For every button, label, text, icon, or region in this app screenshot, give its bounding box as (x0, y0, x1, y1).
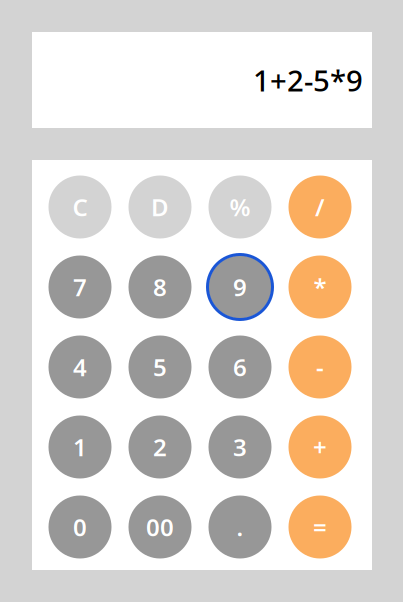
button[interactable]: 9 (200, 247, 280, 327)
button[interactable]: Add (280, 407, 360, 487)
button[interactable]: Subtract (280, 327, 360, 407)
button[interactable]: Decimal point (200, 487, 280, 567)
button[interactable]: 4 (40, 327, 120, 407)
button[interactable]: Multiply (280, 247, 360, 327)
staticText: 2 (153, 431, 167, 463)
staticText: 00 (146, 511, 174, 543)
button[interactable]: 1 (40, 407, 120, 487)
button[interactable]: Delete (120, 167, 200, 247)
staticText: 7 (73, 271, 87, 303)
button[interactable]: Divide (280, 167, 360, 247)
button[interactable]: 00 (120, 487, 200, 567)
staticText: + (313, 431, 327, 463)
button[interactable]: 3 (200, 407, 280, 487)
staticText: 0 (73, 511, 87, 543)
button[interactable]: 5 (120, 327, 200, 407)
staticText: 5 (153, 351, 167, 383)
staticText: 6 (233, 351, 247, 383)
staticText: * (313, 271, 326, 303)
staticText: 3 (233, 431, 247, 463)
button[interactable]: Clear (40, 167, 120, 247)
staticText: = (313, 511, 327, 543)
staticText: 9 (233, 271, 247, 303)
button[interactable]: 2 (120, 407, 200, 487)
button[interactable]: 8 (120, 247, 200, 327)
staticText: 1 (73, 431, 87, 463)
staticText: 8 (153, 271, 167, 303)
staticText: 4 (73, 351, 87, 383)
button[interactable]: 6 (200, 327, 280, 407)
staticText: / (315, 191, 325, 223)
button[interactable]: Equals (280, 487, 360, 567)
staticText: D (151, 191, 169, 223)
button[interactable]: 0 (40, 487, 120, 567)
button[interactable]: Percent (200, 167, 280, 247)
staticText: C (72, 191, 87, 223)
button[interactable]: 7 (40, 247, 120, 327)
staticText: . (236, 511, 243, 543)
staticText: - (316, 351, 324, 383)
staticText: % (229, 191, 250, 223)
staticText: 1+2-5*9 (253, 60, 363, 99)
